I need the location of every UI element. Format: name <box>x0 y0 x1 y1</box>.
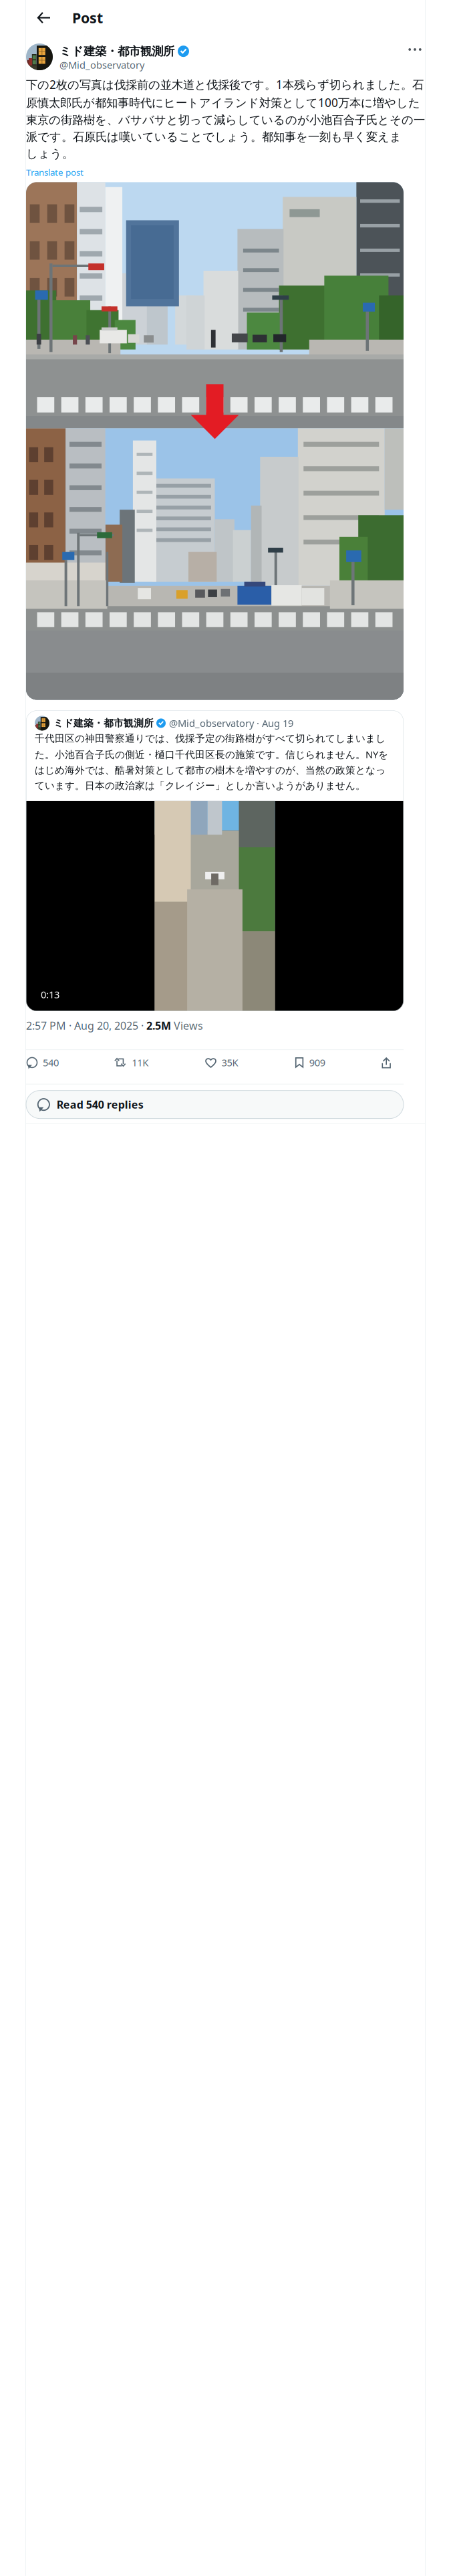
staticText: 2.5M <box>146 1018 171 1033</box>
staticText: Read 540 replies <box>57 1097 143 1112</box>
staticText: Post <box>72 8 103 27</box>
button[interactable]: Read 540 replies <box>26 1090 404 1119</box>
staticText: ミド建築・都市観測所 <box>53 717 154 729</box>
staticText: 909 <box>309 1056 325 1069</box>
staticText: 35K <box>221 1056 238 1069</box>
staticText: 540 <box>43 1056 59 1069</box>
staticText: ミド建築・都市観測所 <box>59 44 174 58</box>
button[interactable]: 35K <box>205 1056 238 1069</box>
staticText: 11K <box>132 1056 148 1069</box>
button[interactable]: 909 <box>295 1056 325 1069</box>
button[interactable]: 11K <box>115 1056 148 1069</box>
button[interactable]: 540 <box>26 1056 59 1069</box>
staticText: 2:57 PM · Aug 20, 2025 · <box>26 1018 146 1033</box>
staticText: 0:13 <box>41 988 59 1001</box>
staticText: 千代田区の神田警察通りでは、伐採予定の街路樹がすべて切られてしまいました。小池百… <box>35 733 388 792</box>
button[interactable]: More options <box>406 43 424 56</box>
staticText: @Mid_observatory <box>59 58 144 71</box>
button[interactable]: Back <box>32 6 55 29</box>
staticText: Translate post <box>26 166 84 178</box>
button[interactable]: Share <box>382 1057 392 1068</box>
staticText: @Mid_observatory · Aug 19 <box>169 717 293 730</box>
button[interactable]: Translate post <box>26 166 84 178</box>
staticText: Views <box>171 1018 203 1033</box>
staticText: 下の2枚の写真は伐採前の並木道と伐採後です。1本残らず切られました。石原慎太郎氏… <box>26 77 425 161</box>
